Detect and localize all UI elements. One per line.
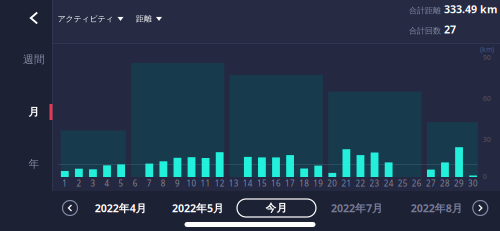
staticText: 年 [28,157,39,170]
staticText: 27 [426,178,436,189]
staticText: 2022年8月 [411,201,463,215]
staticText: 17 [285,178,295,189]
button[interactable]: 2022年7月 [331,198,387,218]
staticText: 12 [215,178,225,189]
button[interactable]: 2022年5月 [172,198,228,218]
staticText: 月 [28,105,39,118]
staticText: 14 [243,178,253,189]
staticText: 週間 [23,53,45,66]
staticText: 5 [119,178,124,189]
staticText: 30 [468,178,478,189]
staticText: 22 [355,178,365,189]
staticText: 7 [147,178,152,189]
staticText: 90 [483,53,491,62]
staticText: 15 [257,178,267,189]
button[interactable]: 距離 [133,7,165,31]
button[interactable]: アクティビティ [54,7,127,31]
staticText: 3 [90,178,95,189]
staticText: 23 [370,178,380,189]
staticText: 0 [483,172,487,181]
staticText: アクティビティ [57,14,113,24]
staticText: 今月 [265,201,287,214]
button[interactable]: 2022年4月 [95,198,151,218]
staticText: 9 [175,178,180,189]
staticText: 16 [271,178,281,189]
staticText: 2022年5月 [172,201,224,215]
button[interactable]: 2022年8月 [411,198,467,218]
button[interactable]: 前の月 [58,196,82,220]
staticText: 10 [186,178,196,189]
staticText: 18 [299,178,309,189]
staticText: 合計距離 [409,6,441,15]
staticText: 13 [229,178,239,189]
staticText: 30 [483,135,491,144]
staticText: 合計回数 [409,26,441,36]
staticText: 20 [327,178,337,189]
button[interactable]: 年 [12,153,56,175]
staticText: 2022年4月 [95,201,147,215]
staticText: 6 [133,178,138,189]
button[interactable]: 週間 [12,48,56,70]
staticText: 27 [444,22,456,36]
staticText: 28 [440,178,450,189]
staticText: 26 [412,178,422,189]
staticText: 19 [313,178,323,189]
button[interactable]: 戻る [12,0,56,36]
staticText: 25 [398,178,408,189]
staticText: (km) [480,45,494,54]
button[interactable]: 月 [12,101,56,123]
staticText: 11 [201,178,211,189]
staticText: 2022年7月 [331,201,383,215]
button[interactable]: 今月 [237,199,316,217]
staticText: 60 [483,94,491,103]
staticText: 333.49 km [444,2,497,16]
staticText: 21 [341,178,351,189]
staticText: 24 [384,178,394,189]
staticText: 8 [161,178,166,189]
staticText: 4 [104,178,109,189]
staticText: 29 [454,178,464,189]
staticText: 2 [76,178,81,189]
button[interactable]: 次の月 [468,196,492,220]
staticText: 距離 [136,14,152,24]
staticText: 1 [62,178,67,189]
